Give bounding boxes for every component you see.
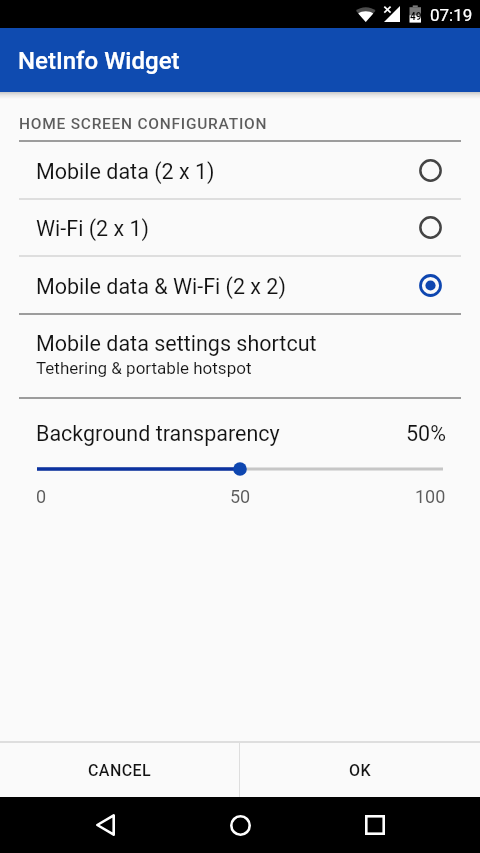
button[interactable]: CANCEL (0, 743, 239, 797)
staticText: Mobile data (2 x 1) (36, 159, 419, 184)
staticText: Wi-Fi (2 x 1) (36, 216, 419, 241)
staticText: 100 (415, 486, 446, 507)
button[interactable]: Mobile data settings shortcut (0, 315, 480, 397)
button[interactable]: Back (75, 797, 135, 853)
staticText: Tethering & portable hotspot (36, 358, 252, 378)
button[interactable] (36, 459, 446, 479)
staticText: NetInfo Widget (18, 47, 180, 75)
button[interactable]: Mobile data (2 x 1) (0, 142, 480, 198)
staticText: OK (349, 761, 371, 780)
staticText: Mobile data settings shortcut (36, 331, 317, 356)
staticText: CANCEL (88, 761, 152, 780)
staticText: 49 (410, 11, 422, 23)
button[interactable]: Home (210, 797, 270, 853)
button[interactable]: OK (240, 743, 480, 797)
staticText: 07:19 (430, 5, 473, 25)
button[interactable]: Recent apps (345, 797, 405, 853)
staticText: HOME SCREEN CONFIGURATION (19, 115, 268, 133)
staticText: 50% (406, 421, 446, 446)
staticText: 0 (36, 486, 47, 507)
staticText: Background transparency (36, 421, 406, 446)
button[interactable]: Mobile data & Wi-Fi (2 x 2) (0, 257, 480, 313)
button[interactable]: Wi-Fi (2 x 1) (0, 200, 480, 255)
staticText: 50 (230, 486, 251, 507)
staticText: Mobile data & Wi-Fi (2 x 2) (36, 274, 419, 299)
